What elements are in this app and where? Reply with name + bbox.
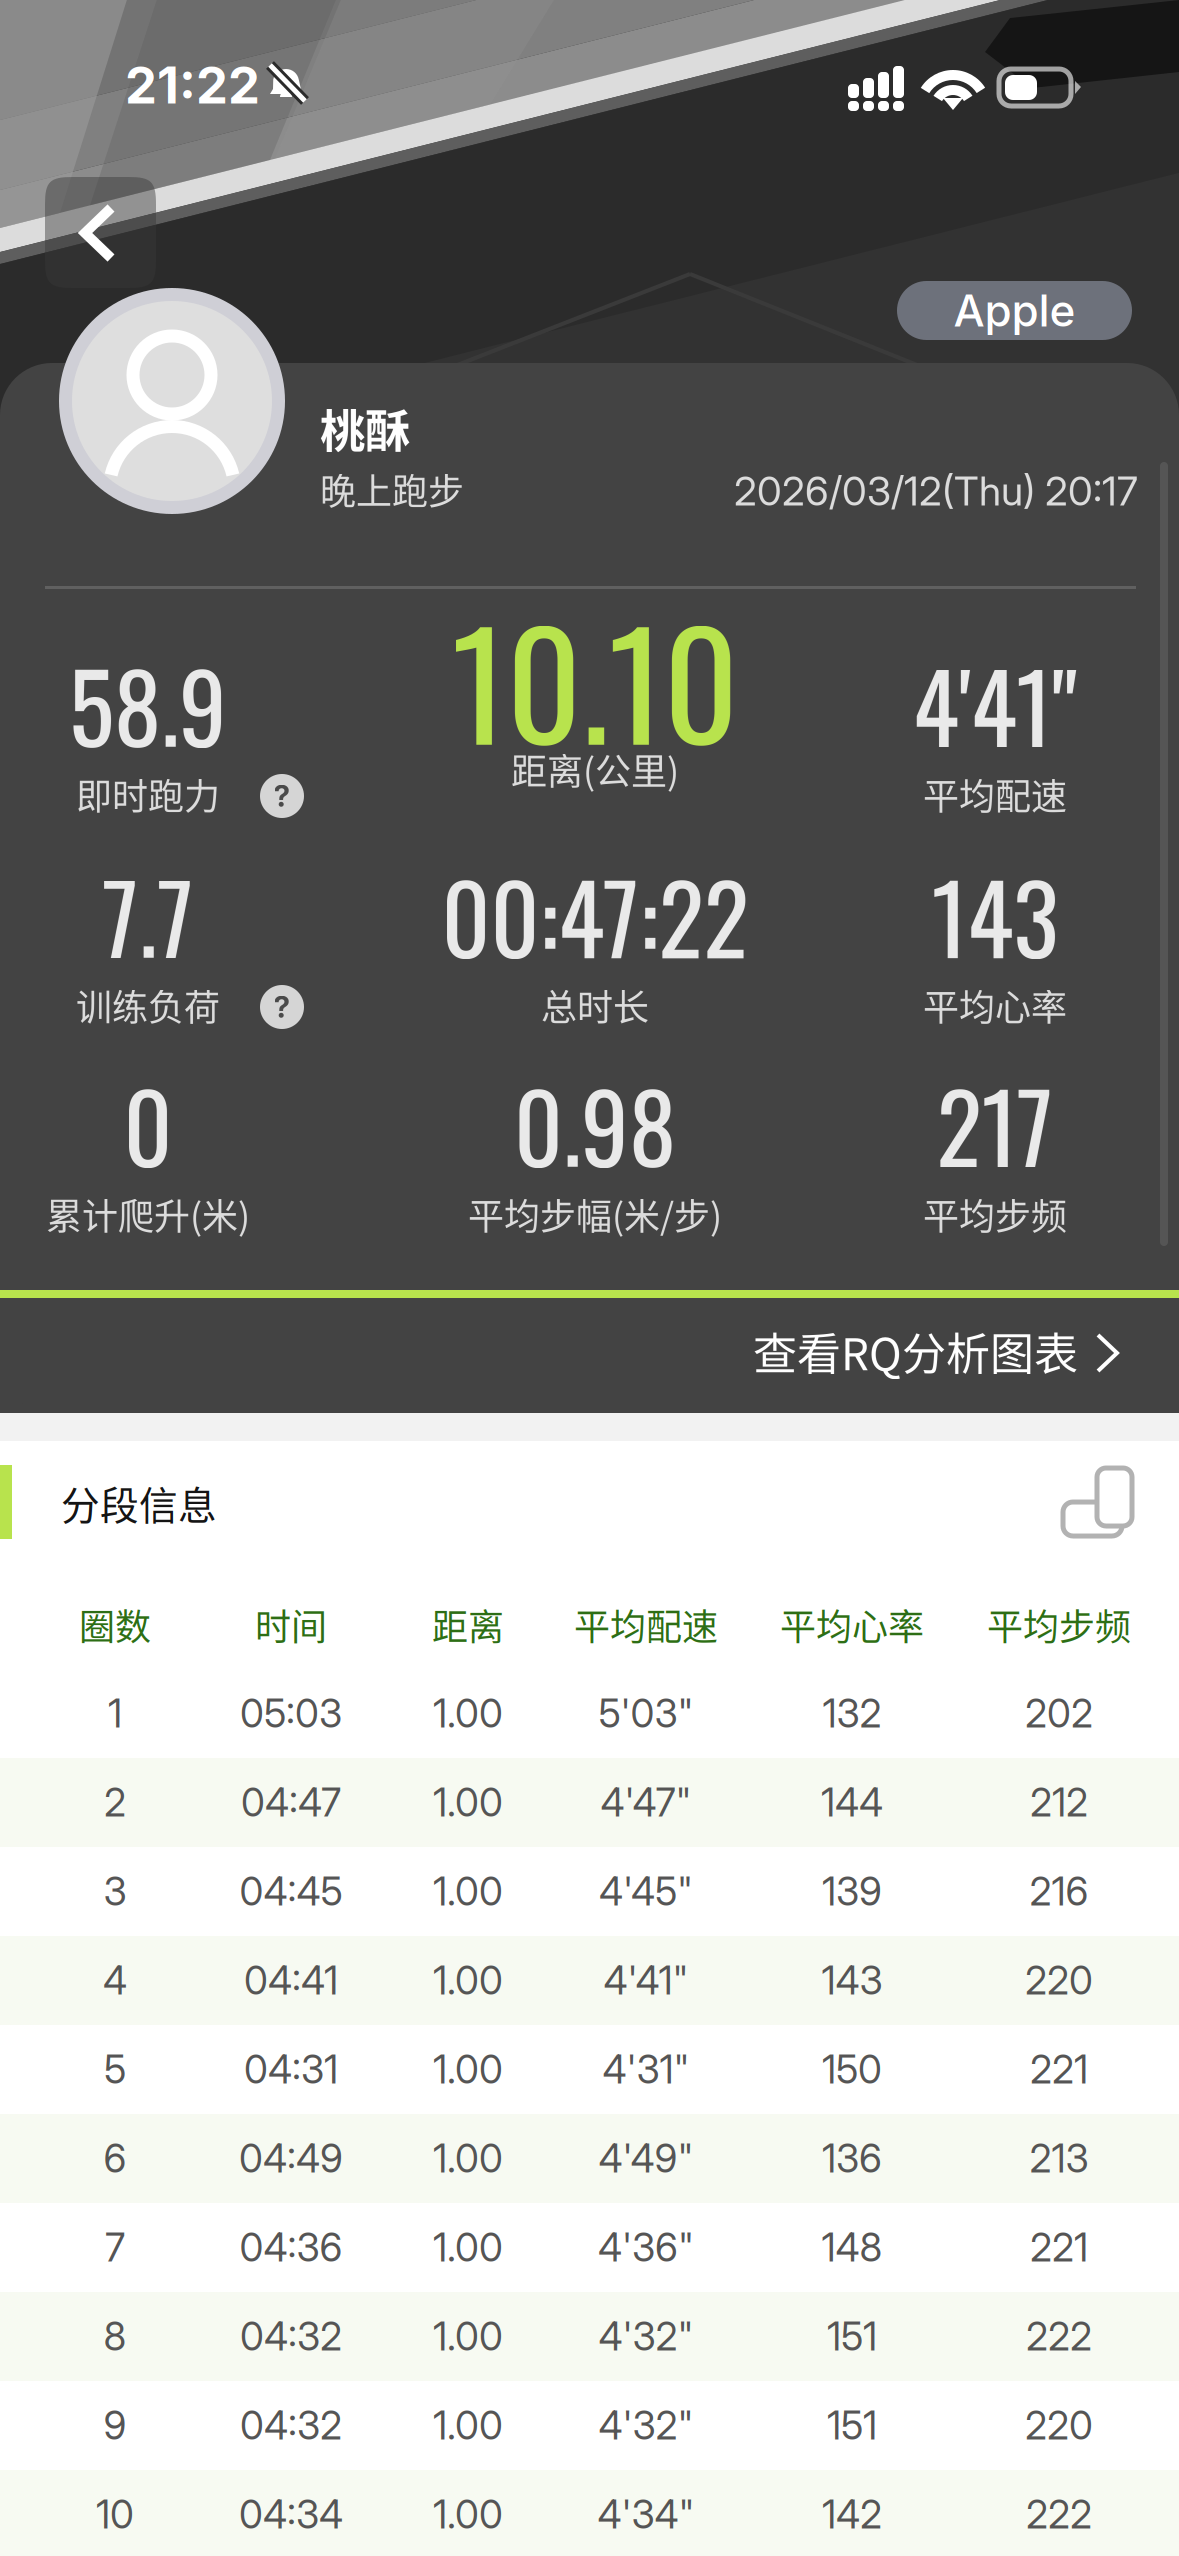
staticText: 04:31 <box>244 2046 338 2093</box>
staticText: 1.00 <box>433 2491 503 2538</box>
staticText: 1.00 <box>433 2313 503 2360</box>
staticText: 时间 <box>255 1598 327 1650</box>
staticText: 5'03" <box>598 1690 693 1737</box>
staticText: 1.00 <box>433 2402 503 2449</box>
staticText: 4'34" <box>597 2491 694 2538</box>
staticText: 222 <box>1026 2491 1092 2538</box>
staticText: 平均配速 <box>923 768 1067 820</box>
staticText: 04:49 <box>239 2135 343 2182</box>
staticText: 平均心率 <box>923 979 1067 1031</box>
staticText: 1.00 <box>433 2135 503 2182</box>
staticText: 4'41" <box>913 634 1077 774</box>
staticText: 00:47:22 <box>441 845 748 985</box>
staticText: 151 <box>827 2402 877 2449</box>
staticText: 4 <box>103 1957 127 2004</box>
staticText: 04:47 <box>241 1779 341 1826</box>
staticText: 132 <box>822 1690 881 1737</box>
staticText: 1 <box>108 1690 122 1737</box>
staticText: 143 <box>821 1957 882 2004</box>
staticText: 1.00 <box>433 1779 503 1826</box>
staticText: Apple <box>953 284 1075 337</box>
staticText: 142 <box>822 2491 882 2538</box>
staticText: 04:32 <box>240 2313 342 2360</box>
staticText: 150 <box>822 2046 882 2093</box>
staticText: 平均步频 <box>987 1598 1131 1650</box>
staticText: 04:32 <box>240 2402 342 2449</box>
staticText: 222 <box>1026 2313 1092 2360</box>
staticText: 累计爬升(米) <box>46 1188 250 1240</box>
staticText: 144 <box>821 1779 883 1826</box>
staticText: 查看RQ分析图表 <box>753 1319 1078 1383</box>
staticText: ? <box>273 989 290 1025</box>
staticText: 1.00 <box>433 1957 503 2004</box>
staticText: 1.00 <box>433 1868 503 1915</box>
button[interactable]: Back <box>45 177 156 288</box>
staticText: 晚上跑步 <box>320 463 464 515</box>
staticText: 平均心率 <box>780 1598 924 1650</box>
staticText: 04:45 <box>239 1868 342 1915</box>
staticText: 0.98 <box>514 1054 676 1194</box>
staticText: 桃酥 <box>320 395 410 461</box>
staticText: 216 <box>1029 1868 1088 1915</box>
staticText: 平均步频 <box>923 1188 1067 1240</box>
staticText: 202 <box>1025 1690 1093 1737</box>
staticText: 10.10 <box>451 571 738 787</box>
staticText: 212 <box>1030 1779 1088 1826</box>
staticText: 221 <box>1030 2046 1088 2093</box>
staticText: 213 <box>1029 2135 1088 2182</box>
staticText: 10 <box>96 2491 134 2538</box>
staticText: 4'32" <box>598 2402 693 2449</box>
staticText: ? <box>273 778 290 814</box>
staticText: 训练负荷 <box>76 979 220 1031</box>
staticText: 139 <box>822 1868 882 1915</box>
staticText: 总时长 <box>541 979 649 1031</box>
staticText: 平均步幅(米/步) <box>468 1188 722 1240</box>
staticText: 220 <box>1025 1957 1093 2004</box>
staticText: 4'32" <box>598 2313 693 2360</box>
staticText: 21:22 <box>125 54 260 116</box>
staticText: 分段信息 <box>61 1475 217 1531</box>
staticText: 04:41 <box>244 1957 338 2004</box>
staticText: 7 <box>105 2224 125 2271</box>
staticText: 4'49" <box>598 2135 693 2182</box>
staticText: 1.00 <box>433 2046 503 2093</box>
staticText: 220 <box>1025 2402 1093 2449</box>
staticText: 2026/03/12(Thu) 20:17 <box>734 467 1138 515</box>
staticText: 6 <box>103 2135 126 2182</box>
staticText: 即时跑力 <box>76 768 220 820</box>
staticText: 58.9 <box>69 634 227 774</box>
staticText: 5 <box>104 2046 126 2093</box>
staticText: 4'41" <box>603 1957 688 2004</box>
staticText: 04:36 <box>239 2224 342 2271</box>
staticText: 平均配速 <box>574 1598 718 1650</box>
staticText: 2 <box>104 1779 126 1826</box>
staticText: 距离 <box>432 1598 504 1650</box>
staticText: 4'31" <box>602 2046 689 2093</box>
staticText: 143 <box>931 845 1058 985</box>
staticText: 4'45" <box>599 1868 693 1915</box>
staticText: 7.7 <box>102 845 194 985</box>
staticText: 0 <box>123 1054 172 1194</box>
staticText: 9 <box>103 2402 126 2449</box>
button[interactable]: 查看RQ分析图表 <box>0 1298 1179 1398</box>
staticText: 148 <box>821 2224 882 2271</box>
staticText: 04:34 <box>239 2491 343 2538</box>
staticText: 221 <box>1030 2224 1088 2271</box>
staticText: 3 <box>103 1868 126 1915</box>
staticText: 4'47" <box>600 1779 691 1826</box>
staticText: 1.00 <box>433 2224 503 2271</box>
button[interactable]: Apple <box>897 281 1132 340</box>
staticText: 8 <box>103 2313 126 2360</box>
staticText: 217 <box>936 1054 1053 1194</box>
staticText: 圈数 <box>79 1598 151 1650</box>
staticText: 4'36" <box>598 2224 694 2271</box>
staticText: 1.00 <box>433 1690 503 1737</box>
staticText: 05:03 <box>240 1690 342 1737</box>
staticText: 距离(公里) <box>511 743 679 795</box>
button[interactable]: Rotate table <box>1049 1454 1147 1552</box>
staticText: 136 <box>822 2135 882 2182</box>
staticText: 151 <box>827 2313 877 2360</box>
